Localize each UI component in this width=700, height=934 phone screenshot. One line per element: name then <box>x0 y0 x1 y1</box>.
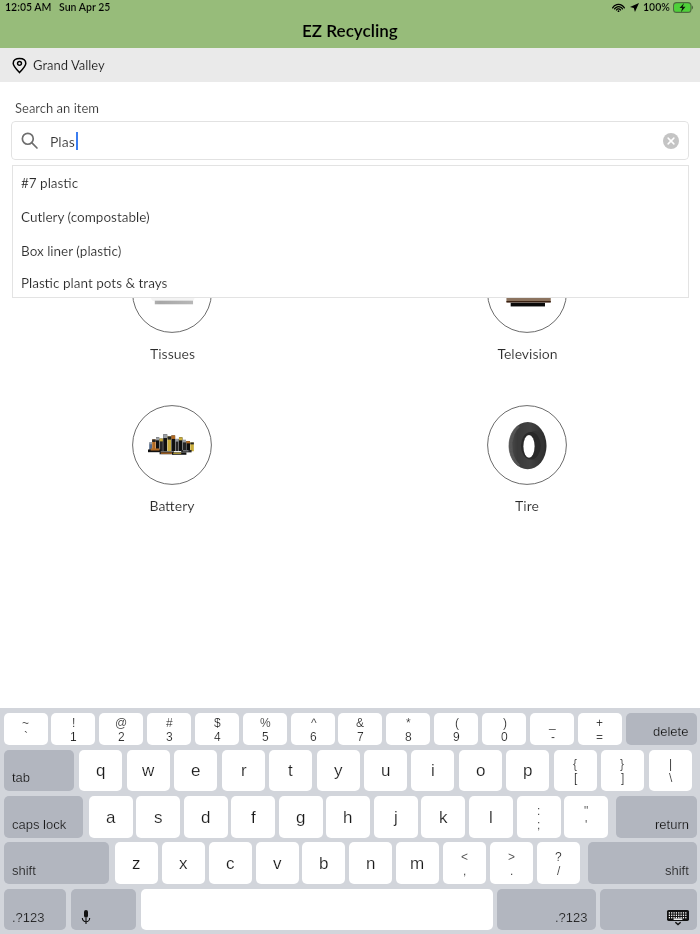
button[interactable]: " <box>564 796 608 838</box>
button[interactable]: Dictation <box>71 889 136 930</box>
staticText: n <box>366 854 376 873</box>
button[interactable]: Box liner (plastic) <box>12 234 689 268</box>
staticText: caps lock <box>12 817 67 832</box>
staticText: @ <box>115 716 128 729</box>
button[interactable]: * <box>386 713 430 745</box>
button[interactable]: h <box>326 796 370 838</box>
button[interactable]: delete <box>626 713 697 745</box>
staticText: " <box>584 804 589 817</box>
button[interactable]: s <box>136 796 180 838</box>
staticText: | <box>669 757 673 770</box>
button[interactable]: m <box>396 842 439 884</box>
button[interactable]: & <box>338 713 382 745</box>
staticText: 5 <box>262 730 269 743</box>
button[interactable]: c <box>209 842 252 884</box>
button[interactable]: #7 plastic <box>12 166 689 200</box>
staticText: % <box>260 716 271 729</box>
button[interactable]: p <box>506 750 549 791</box>
button[interactable]: Cutlery (compostable) <box>12 200 689 234</box>
staticText: ] <box>621 771 625 784</box>
button[interactable]: return <box>616 796 697 838</box>
button[interactable]: Plas <box>11 121 689 160</box>
staticText: 7 <box>357 730 364 743</box>
button[interactable]: + <box>578 713 622 745</box>
button[interactable]: Television <box>472 253 582 366</box>
staticText: \ <box>669 771 673 784</box>
button[interactable]: | <box>649 750 692 791</box>
staticText: w <box>142 761 155 780</box>
button[interactable]: } <box>601 750 644 791</box>
button[interactable]: e <box>174 750 217 791</box>
button[interactable]: z <box>115 842 158 884</box>
button[interactable]: caps lock <box>4 796 83 838</box>
button[interactable]: # <box>147 713 191 745</box>
button[interactable]: t <box>269 750 312 791</box>
staticText: } <box>620 757 625 770</box>
button[interactable]: b <box>302 842 345 884</box>
button[interactable]: shift <box>588 842 697 884</box>
button[interactable]: k <box>421 796 465 838</box>
button[interactable]: ? <box>537 842 580 884</box>
button[interactable]: Battery <box>117 405 227 518</box>
button[interactable]: y <box>317 750 360 791</box>
button[interactable]: ( <box>434 713 478 745</box>
staticText: = <box>596 730 604 743</box>
button[interactable]: ~ <box>4 713 48 745</box>
button[interactable]: n <box>349 842 392 884</box>
staticText: 4 <box>214 730 221 743</box>
staticText: g <box>296 808 306 827</box>
button[interactable]: ! <box>51 713 95 745</box>
button[interactable]: a <box>89 796 133 838</box>
staticText: 2 <box>118 730 125 743</box>
button[interactable]: o <box>459 750 502 791</box>
button[interactable]: % <box>243 713 287 745</box>
staticText: 1 <box>70 730 77 743</box>
staticText: [ <box>574 771 578 784</box>
button[interactable]: : <box>517 796 561 838</box>
staticText: k <box>439 808 448 827</box>
staticText: ^ <box>311 716 317 729</box>
button[interactable]: @ <box>99 713 143 745</box>
button[interactable]: _ <box>530 713 574 745</box>
button[interactable]: .?123 <box>4 889 66 930</box>
button[interactable]: $ <box>195 713 239 745</box>
button[interactable]: tab <box>4 750 74 791</box>
button[interactable]: ) <box>482 713 526 745</box>
button[interactable]: ^ <box>291 713 335 745</box>
staticText: tab <box>12 770 31 785</box>
button[interactable]: u <box>364 750 407 791</box>
staticText: ' <box>585 818 588 831</box>
staticText: 100% <box>643 1 670 14</box>
button[interactable]: < <box>443 842 486 884</box>
button[interactable]: Tire <box>472 405 582 518</box>
button[interactable]: i <box>411 750 454 791</box>
button[interactable]: d <box>184 796 228 838</box>
button[interactable]: f <box>231 796 275 838</box>
staticText: 8 <box>405 730 412 743</box>
button[interactable]: Tissues <box>117 253 227 366</box>
button[interactable]: v <box>256 842 299 884</box>
staticText: Plastic plant pots & trays <box>21 275 168 291</box>
staticText: - <box>551 730 555 743</box>
button[interactable]: x <box>162 842 205 884</box>
button[interactable]: Plastic plant pots & trays <box>12 268 689 298</box>
staticText: ; <box>537 818 541 831</box>
button[interactable]: shift <box>4 842 109 884</box>
button[interactable]: l <box>469 796 513 838</box>
button[interactable]: > <box>490 842 533 884</box>
button[interactable]: w <box>127 750 170 791</box>
button[interactable]: r <box>222 750 265 791</box>
button[interactable]: q <box>79 750 122 791</box>
button[interactable]: .?123 <box>497 889 596 930</box>
staticText: # <box>166 716 173 729</box>
button[interactable]: g <box>279 796 323 838</box>
button[interactable]: Hide keyboard <box>600 889 697 930</box>
button[interactable]: Clear <box>663 133 679 149</box>
staticText: 6 <box>310 730 317 743</box>
staticText: ! <box>72 716 76 729</box>
staticText: Television <box>497 345 558 362</box>
button[interactable]: j <box>374 796 418 838</box>
button[interactable]: { <box>554 750 597 791</box>
staticText: #7 plastic <box>21 175 79 191</box>
